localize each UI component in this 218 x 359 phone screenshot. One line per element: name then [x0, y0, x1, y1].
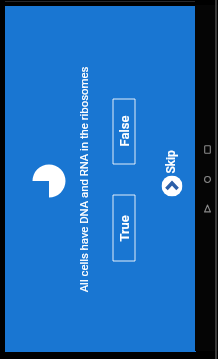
button[interactable]: False	[112, 98, 135, 164]
button[interactable]: Skip	[161, 175, 182, 196]
staticText: All cells have DNA and RNA in the riboso…	[76, 66, 89, 292]
staticText: True	[116, 214, 131, 241]
button[interactable]: Back	[201, 201, 213, 215]
button[interactable]: True	[112, 194, 135, 261]
button[interactable]: Recents	[201, 142, 213, 156]
staticText: Skip	[163, 149, 177, 173]
staticText: False	[116, 115, 131, 146]
button[interactable]: Home	[201, 172, 213, 186]
